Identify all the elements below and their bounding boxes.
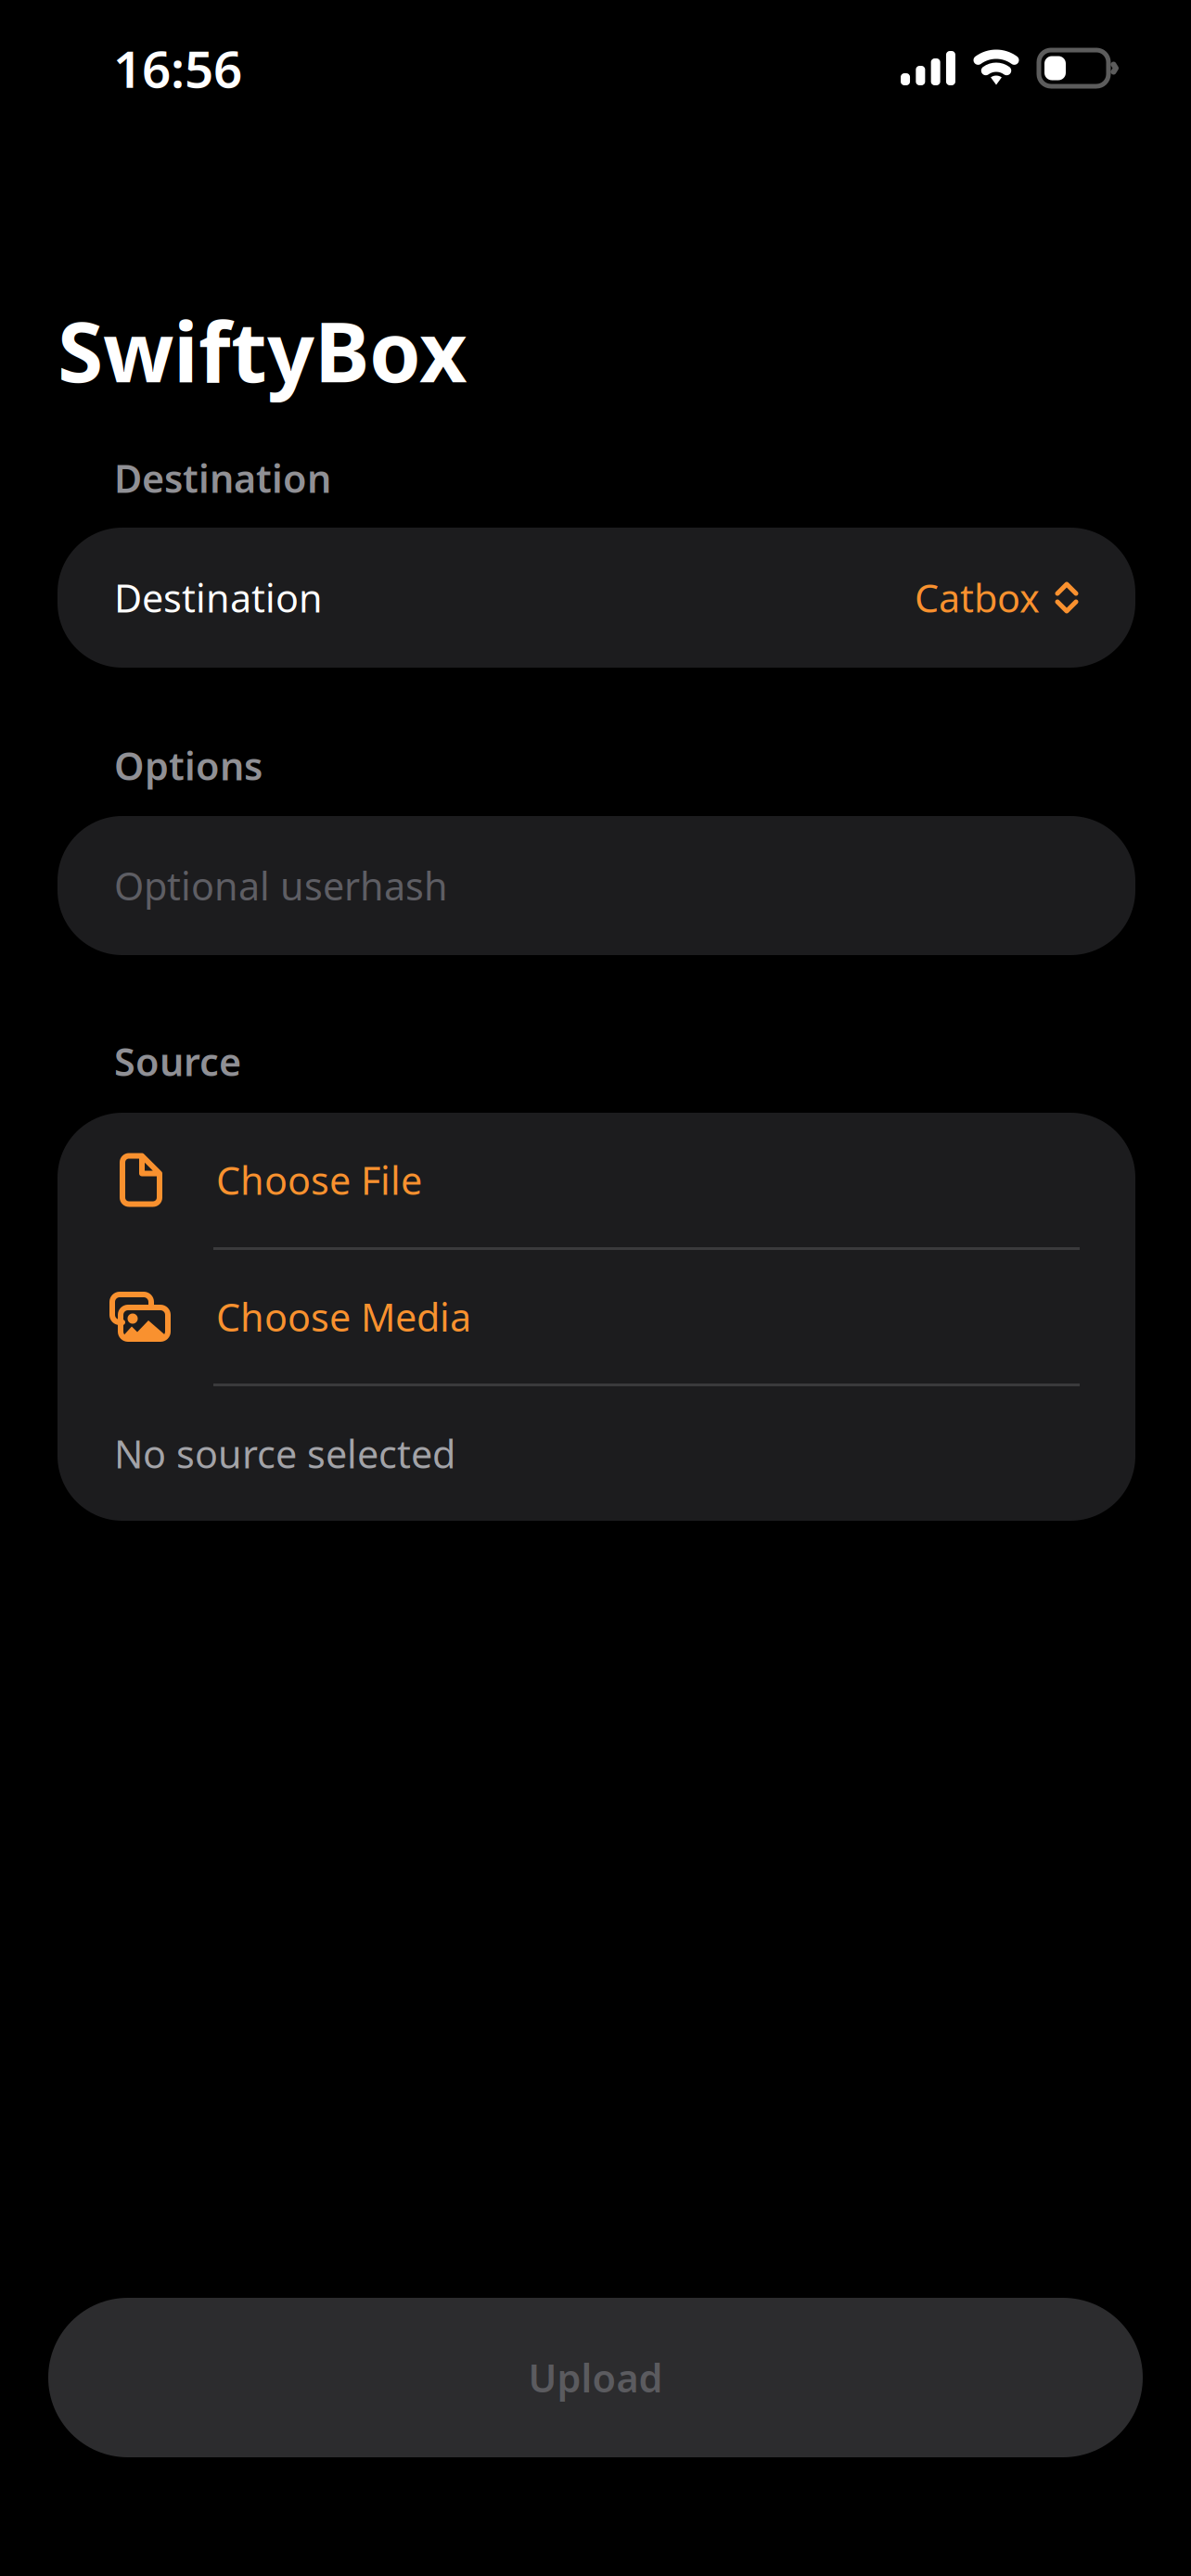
staticText: Choose Media xyxy=(216,1291,471,1342)
staticText: Source xyxy=(114,1036,241,1087)
staticText: 16:56 xyxy=(113,34,242,102)
button[interactable]: Upload xyxy=(48,2298,1143,2457)
button[interactable]: Optional userhash xyxy=(58,816,1135,955)
staticText: Choose File xyxy=(216,1155,422,1205)
button[interactable]: Destination xyxy=(58,528,1135,668)
staticText: Options xyxy=(114,740,263,791)
button[interactable]: Choose Media xyxy=(58,1250,1135,1384)
staticText: SwiftyBox xyxy=(58,295,467,405)
button[interactable]: Choose File xyxy=(58,1113,1135,1247)
staticText: Catbox xyxy=(915,572,1040,623)
staticText: Optional userhash xyxy=(114,860,448,911)
staticText: No source selected xyxy=(114,1428,455,1479)
staticText: Destination xyxy=(114,572,323,623)
staticText: Destination xyxy=(114,453,331,503)
staticText: Upload xyxy=(528,2352,663,2403)
